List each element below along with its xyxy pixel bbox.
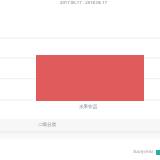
button[interactable]: 二级分类 (0, 119, 160, 131)
staticText: 二级分类 (38, 122, 57, 128)
button[interactable]: 支出合计(元)： (133, 149, 157, 154)
staticText: 水果饮品 (79, 104, 98, 110)
button[interactable]: 2017.06.17 - 2018.06.17 (60, 0, 108, 5)
